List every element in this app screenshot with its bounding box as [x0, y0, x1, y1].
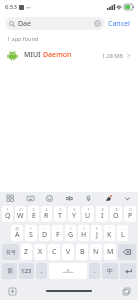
- staticText: Q: [5, 211, 11, 221]
- staticText: R: [44, 211, 49, 221]
- button[interactable]: Backspace: [118, 244, 136, 260]
- button[interactable]: -: [117, 225, 128, 241]
- staticText: K: [107, 230, 112, 240]
- button[interactable]: 7: [82, 206, 94, 222]
- staticText: F: [56, 230, 60, 240]
- staticText: :: [44, 226, 45, 231]
- staticText: /: [30, 226, 32, 231]
- button[interactable]: MIUI: [0, 44, 138, 66]
- button[interactable]: Comma: [36, 263, 47, 279]
- button[interactable]: 9: [110, 206, 122, 222]
- staticText: Cancel: [108, 19, 130, 29]
- button[interactable]: V: [62, 244, 74, 260]
- staticText: I: [101, 211, 104, 221]
- button[interactable]: 4: [41, 206, 52, 222]
- button[interactable]: ): [78, 225, 89, 241]
- button[interactable]: Clear text: [94, 20, 101, 27]
- button[interactable]: 8: [96, 206, 108, 222]
- staticText: Daemon: [43, 50, 72, 60]
- button[interactable]: Keyboard layout: [25, 193, 36, 204]
- staticText: Y: [72, 211, 76, 221]
- staticText: S: [29, 230, 33, 240]
- button[interactable]: C: [48, 244, 60, 260]
- staticText: MIUI: [24, 50, 43, 60]
- staticText: L: [121, 230, 125, 240]
- button[interactable]: Home: [45, 286, 93, 296]
- button[interactable]: Hide keyboard: [6, 285, 18, 297]
- staticText: (: [70, 226, 72, 231]
- button[interactable]: 3: [28, 206, 39, 222]
- staticText: V: [66, 247, 71, 257]
- staticText: H: [81, 230, 87, 240]
- button[interactable]: ;: [52, 225, 63, 241]
- staticText: -: [122, 226, 124, 231]
- button[interactable]: Chinese input: [102, 263, 118, 279]
- button[interactable]: @: [11, 225, 23, 241]
- button[interactable]: 0: [124, 206, 136, 222]
- button[interactable]: (: [65, 225, 76, 241]
- button[interactable]: 1: [2, 206, 13, 222]
- staticText: A: [15, 230, 20, 240]
- button[interactable]: One-handed mode: [64, 193, 75, 204]
- staticText: 1 app found: [7, 35, 39, 42]
- button[interactable]: Collapse keyboard: [122, 193, 133, 204]
- button[interactable]: Cancel: [105, 17, 133, 30]
- staticText: E: [32, 211, 36, 221]
- button[interactable]: Recents: [120, 285, 132, 297]
- staticText: 2: [19, 207, 22, 212]
- staticText: 0: [129, 207, 132, 212]
- button[interactable]: Period: [89, 263, 100, 279]
- staticText: 6: [73, 207, 76, 212]
- button[interactable]: Enter: [120, 263, 136, 279]
- button[interactable]: Z: [21, 244, 32, 260]
- staticText: D: [42, 230, 48, 240]
- button[interactable]: B: [76, 244, 88, 260]
- staticText: 简: [7, 267, 13, 275]
- button[interactable]: Symbols: [2, 244, 19, 260]
- button[interactable]: Dae: [5, 17, 105, 30]
- button[interactable]: Numbers: [19, 263, 34, 279]
- staticText: 9: [115, 207, 118, 212]
- staticText: 符号: [6, 249, 16, 255]
- button[interactable]: ¥: [91, 225, 102, 241]
- staticText: 7: [87, 207, 90, 212]
- staticText: 3: [32, 207, 35, 212]
- button[interactable]: Voice input: [83, 193, 94, 204]
- staticText: .: [94, 267, 96, 275]
- button[interactable]: X: [34, 244, 46, 260]
- button[interactable]: Input method: [2, 263, 17, 279]
- staticText: 6:53: [5, 3, 17, 11]
- staticText: 中: [107, 267, 113, 275]
- button[interactable]: 5: [54, 206, 66, 222]
- button[interactable]: Emoji: [44, 193, 55, 204]
- button[interactable]: :: [39, 225, 50, 241]
- staticText: 1: [6, 207, 9, 212]
- staticText: @: [15, 226, 19, 231]
- staticText: ,: [41, 267, 43, 275]
- staticText: 123: [21, 267, 32, 275]
- button[interactable]: Space: [49, 263, 87, 279]
- staticText: C: [52, 247, 57, 257]
- staticText: ": [109, 226, 111, 231]
- button[interactable]: 6: [68, 206, 80, 222]
- staticText: 4: [45, 207, 48, 212]
- button[interactable]: Theme: [103, 193, 114, 204]
- staticText: 1.28 MB: [102, 52, 123, 59]
- staticText: G: [68, 230, 74, 240]
- button[interactable]: ": [104, 225, 115, 241]
- staticText: U: [85, 211, 91, 221]
- button[interactable]: Grid: [5, 193, 16, 204]
- button[interactable]: N: [90, 244, 102, 260]
- button[interactable]: 2: [15, 206, 26, 222]
- staticText: P: [128, 211, 133, 221]
- button[interactable]: M: [104, 244, 116, 260]
- staticText: ): [83, 226, 85, 231]
- staticText: B: [80, 247, 85, 257]
- button[interactable]: /: [25, 225, 37, 241]
- staticText: N: [93, 247, 99, 257]
- staticText: ;: [57, 226, 58, 231]
- staticText: 8: [101, 207, 104, 212]
- staticText: W: [17, 211, 24, 221]
- staticText: T: [58, 211, 62, 221]
- staticText: ¥: [95, 226, 98, 231]
